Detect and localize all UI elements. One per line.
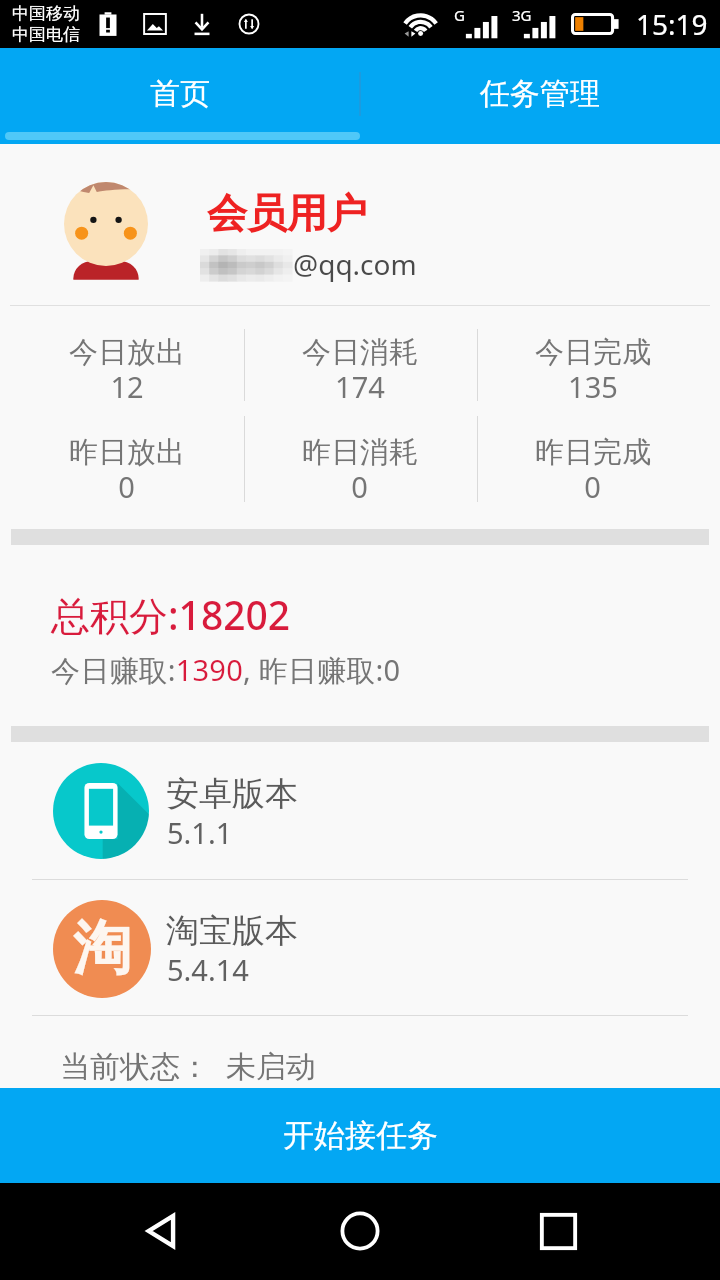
staticText: 12 [110,367,144,406]
button[interactable]: 今日完成 [476,334,709,410]
staticText: 未启动 [226,1048,316,1086]
button[interactable]: 今日消耗 [243,334,476,410]
staticText: 开始接任务 [283,1116,438,1155]
button[interactable]: 昨日消耗 [243,434,476,510]
staticText: 174 [335,367,385,406]
button[interactable]: Home [320,1191,400,1271]
staticText: 中国电信 [12,24,80,45]
staticText: 昨日放出 [69,434,185,471]
staticText: 今日赚取:1390, 昨日赚取:0 [51,650,401,690]
staticText: 今日消耗 [302,334,418,371]
button[interactable]: 昨日完成 [476,434,709,510]
staticText: 任务管理 [480,75,600,113]
staticText: 5.4.14 [167,950,249,989]
staticText: 总积分:18202 [51,588,291,641]
staticText: 5.1.1 [167,813,233,852]
staticText: 今日放出 [69,334,185,371]
button[interactable]: 淘 [0,880,720,1016]
button[interactable]: 安卓版本 [0,743,720,879]
staticText: G [454,5,465,25]
staticText: 昨日完成 [535,434,651,471]
staticText: 0 [584,467,601,506]
staticText: 当前状态： [60,1048,210,1086]
staticText: 淘宝版本 [166,910,298,952]
staticText: 淘 [73,912,131,985]
staticText: 0 [118,467,135,506]
staticText: 今日完成 [535,334,651,371]
staticText: @qq.com [293,245,417,283]
button[interactable]: 今日放出 [10,334,243,410]
staticText: 15:19 [636,5,708,43]
staticText: 中国移动 [12,3,80,24]
staticText: 3G [512,5,532,25]
staticText: 会员用户 [207,188,367,238]
button[interactable]: 任务管理 [360,48,720,144]
button[interactable]: Back [123,1191,203,1271]
button[interactable]: 开始接任务 [0,1088,720,1183]
button[interactable]: 会员用户 [0,144,720,305]
button[interactable]: 当前状态： [60,1048,720,1088]
button[interactable]: 昨日放出 [10,434,243,510]
staticText: 135 [568,367,618,406]
staticText: 首页 [150,75,210,113]
button[interactable]: 首页 [0,48,360,144]
staticText: 0 [351,467,368,506]
staticText: 昨日消耗 [302,434,418,471]
staticText: 安卓版本 [166,773,298,815]
button[interactable]: Recent apps [518,1191,598,1271]
